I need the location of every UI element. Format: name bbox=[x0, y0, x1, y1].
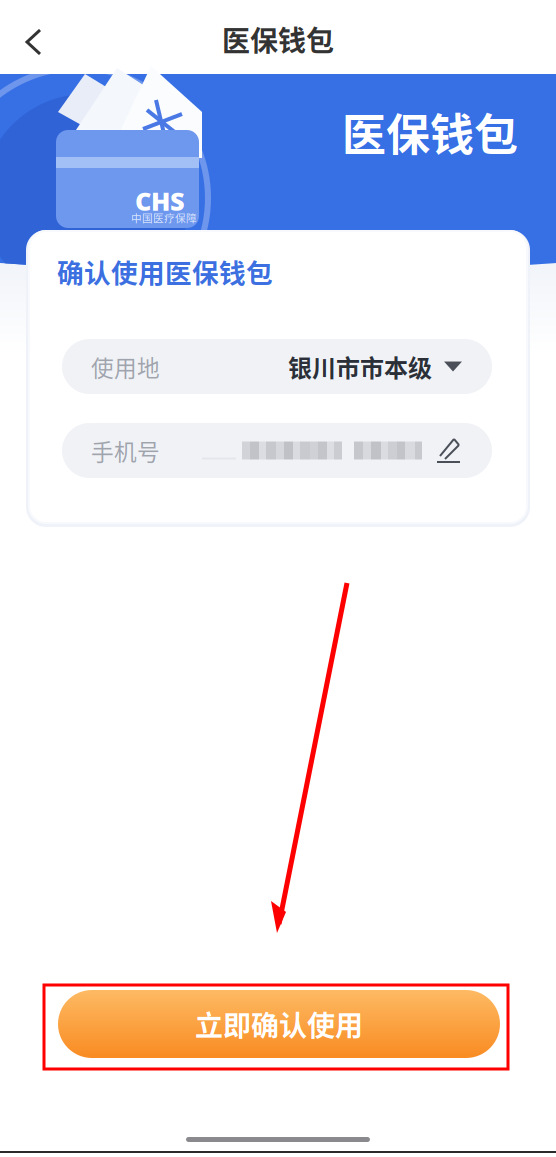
staticText: 医保钱包 bbox=[222, 19, 334, 59]
staticText: 立即确认使用 bbox=[195, 1004, 363, 1044]
staticText: 中国医疗保障 bbox=[131, 210, 197, 225]
button[interactable]: 使用地 bbox=[62, 339, 492, 394]
button[interactable]: 返回 bbox=[0, 0, 56, 74]
button[interactable]: 立即确认使用 bbox=[58, 990, 500, 1058]
staticText: CHS bbox=[135, 184, 185, 218]
staticText: 确认使用医保钱包 bbox=[57, 252, 273, 291]
staticText: 手机号 bbox=[91, 434, 160, 467]
staticText: 银川市市本级 bbox=[288, 349, 432, 384]
staticText: 医保钱包 bbox=[342, 100, 518, 164]
staticText: 使用地 bbox=[91, 350, 160, 383]
button[interactable]: 手机号 bbox=[62, 423, 492, 478]
